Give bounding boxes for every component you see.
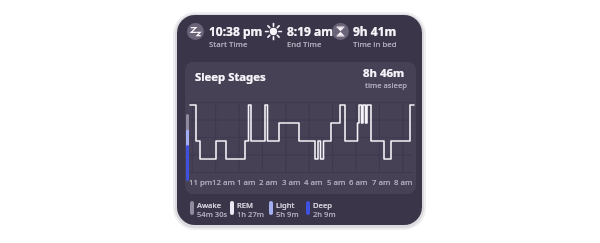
staticText: 2h 9m — [313, 209, 336, 219]
staticText: 8 am — [394, 177, 413, 188]
staticText: Time in bed — [353, 39, 397, 50]
staticText: 10:38 pm — [209, 23, 263, 39]
staticText: 9h 41m — [353, 23, 397, 39]
staticText: 12 am — [212, 177, 235, 188]
staticText: 2 am — [259, 177, 278, 188]
staticText: 1h 27m — [237, 209, 264, 219]
staticText: 1 am — [237, 177, 256, 188]
staticText: Awake — [197, 200, 222, 210]
staticText: Deep — [313, 200, 332, 210]
staticText: Sleep Stages — [195, 69, 266, 84]
staticText: 5h 9m — [276, 209, 299, 219]
button[interactable]: 10:38 pm — [177, 15, 422, 225]
staticText: Light — [276, 200, 295, 210]
staticText: 3 am — [282, 177, 301, 188]
staticText: 7 am — [372, 177, 391, 188]
button[interactable]: Sleep Stages — [185, 62, 416, 194]
staticText: 8:19 am — [287, 23, 333, 39]
staticText: 4 am — [304, 177, 323, 188]
staticText: 6 am — [349, 177, 368, 188]
staticText: End Time — [287, 39, 322, 50]
staticText: 11 pm — [189, 177, 213, 188]
staticText: REM — [237, 200, 253, 210]
staticText: 54m 30s — [197, 209, 228, 219]
staticText: Start Time — [209, 39, 248, 50]
staticText: 8h 46m — [363, 65, 405, 81]
staticText: time asleep — [365, 80, 407, 90]
staticText: 5 am — [327, 177, 346, 188]
